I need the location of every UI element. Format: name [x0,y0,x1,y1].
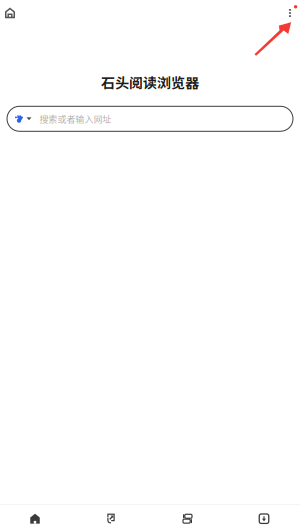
staticText: 搜索或者输入网址 [39,112,111,125]
button[interactable]: Home [0,2,20,24]
button[interactable]: Home [0,508,75,528]
staticText: 石头阅读浏览器 [101,72,199,92]
button[interactable]: Reload [75,508,150,528]
button[interactable]: More options [280,2,300,24]
button[interactable]: Downloads [225,508,300,528]
button[interactable]: Bookshelf [150,508,225,528]
button[interactable]: 搜索或者输入网址 [7,106,293,131]
